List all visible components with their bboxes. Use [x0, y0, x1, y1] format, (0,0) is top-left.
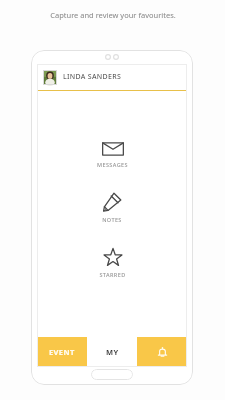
staticText: NOTES	[102, 216, 122, 223]
button[interactable]: Home	[91, 369, 133, 380]
staticText: STARRED	[99, 271, 126, 278]
staticText: MY	[106, 347, 119, 357]
button[interactable]: MY	[87, 337, 137, 367]
staticText: Capture and review your favourites.	[50, 10, 176, 20]
staticText: EVENT	[49, 347, 75, 357]
button[interactable]: NOTES	[88, 190, 136, 225]
button[interactable]: STARRED	[85, 245, 140, 280]
button[interactable]: LINDA SANDERS	[37, 64, 187, 90]
staticText: MESSAGES	[97, 161, 128, 168]
button[interactable]: Notifications	[137, 337, 187, 367]
staticText: LINDA SANDERS	[63, 72, 122, 82]
button[interactable]: MESSAGES	[83, 139, 142, 170]
button[interactable]: EVENT	[37, 337, 87, 367]
